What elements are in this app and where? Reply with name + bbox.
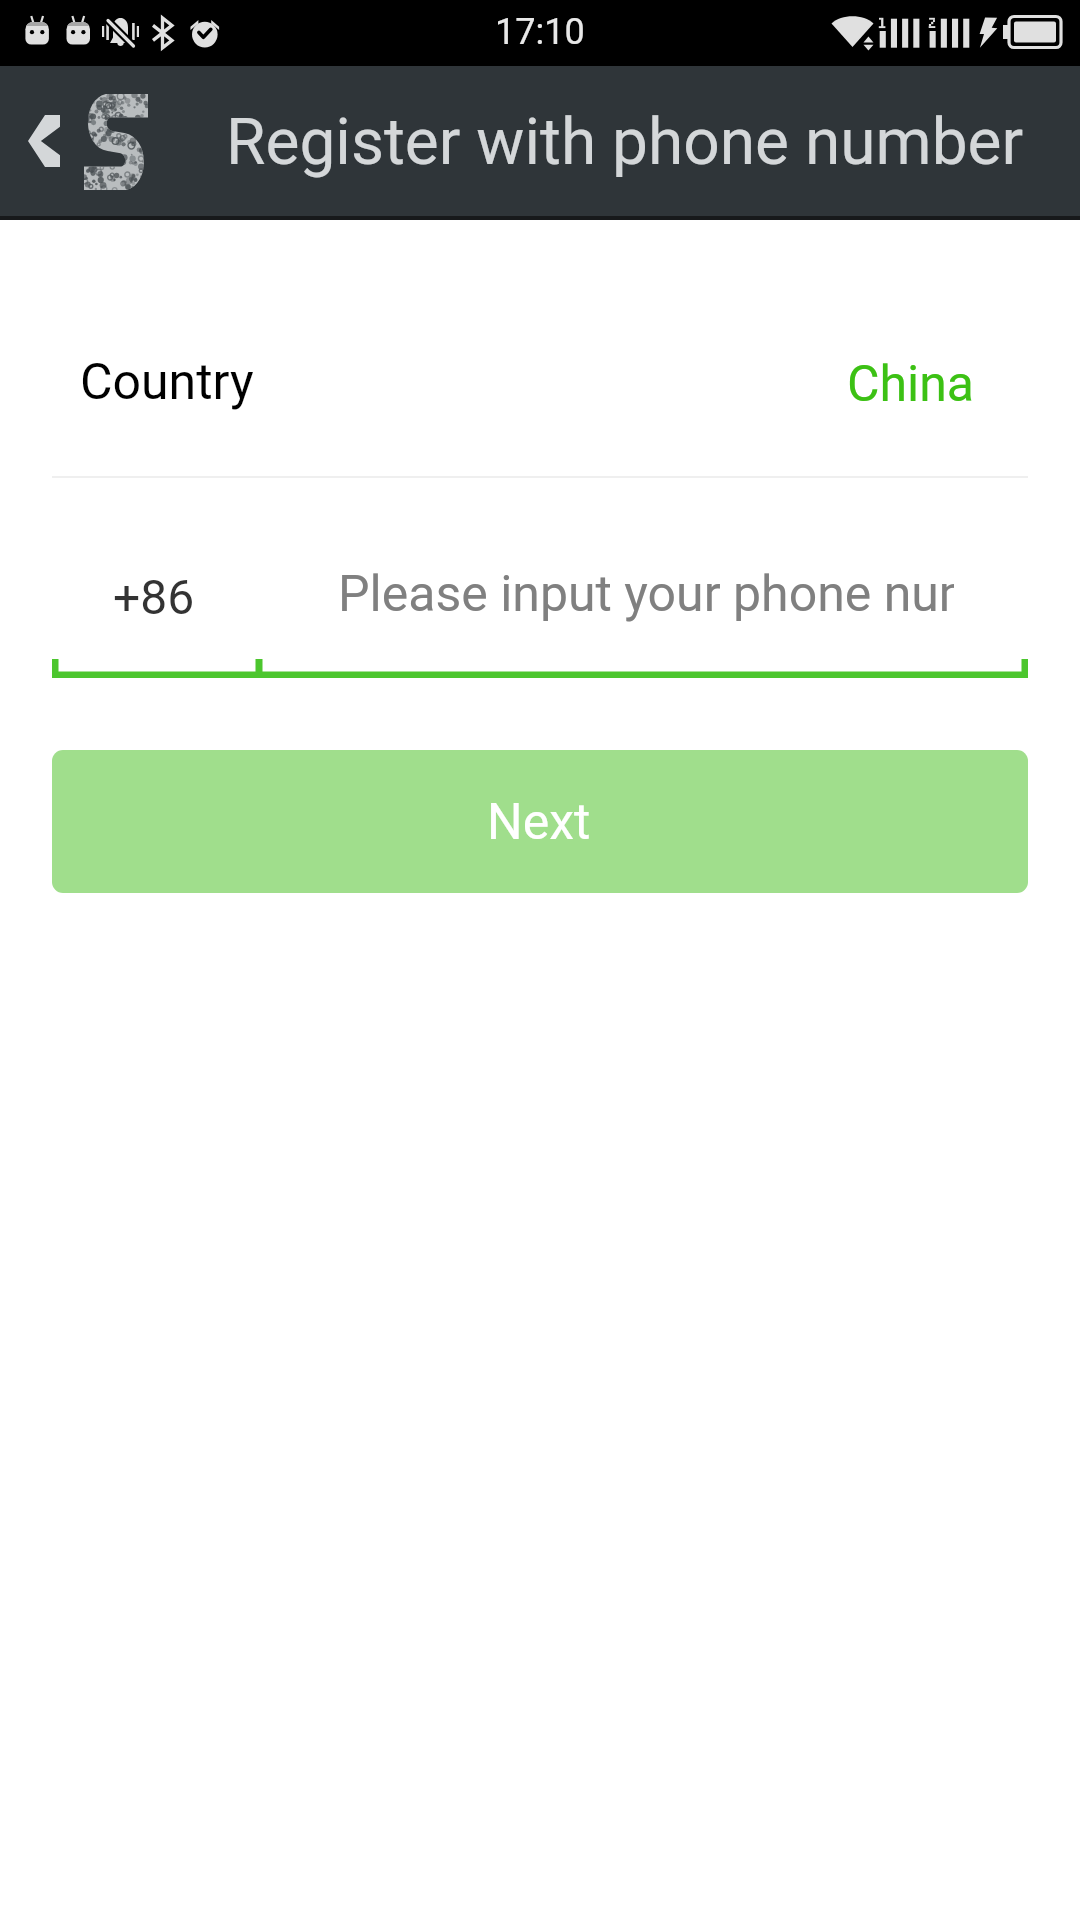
staticText: Next [487, 793, 591, 852]
staticText: +86 [113, 569, 195, 625]
staticText: 17:10 [495, 11, 585, 53]
button[interactable]: Navigate up [0, 66, 160, 216]
button[interactable]: Country [52, 300, 1028, 456]
staticText: Please input your phone number [338, 565, 954, 624]
button[interactable]: Next [52, 750, 1028, 893]
button[interactable]: Please input your phone number [338, 539, 954, 649]
button[interactable]: +86 [52, 540, 256, 650]
staticText: Country [80, 353, 254, 412]
staticText: Register with phone number [226, 105, 1024, 180]
staticText: China [847, 355, 975, 414]
